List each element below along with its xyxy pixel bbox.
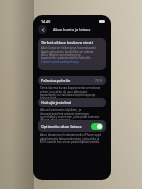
staticText: 70 % (95, 79, 103, 83)
staticText: Palautuspuhelin (41, 78, 71, 83)
button[interactable]: Optimoitu akun lataus (38, 120, 106, 132)
button[interactable]: Hoitojärjestelmä (38, 98, 106, 107)
staticText: Optimoitu akun lataus (41, 124, 82, 129)
staticText: Hoitojärjestelmä (41, 100, 72, 105)
button[interactable]: Palautuspuhelin (38, 76, 106, 85)
staticText: Akun lataamisen hidastamiseksi iPhone op… (40, 133, 103, 144)
button[interactable]: Optimoitu akun lataus (91, 123, 103, 130)
staticText: Akun kunto on heikentynyt huomattavasti.… (41, 46, 97, 59)
staticText: Tärkeä akkua koskeva viesti (41, 40, 93, 45)
staticText: Tämä lukema kuvaa kapasiteettia verrattu… (40, 86, 103, 100)
staticText: 14.40 (41, 19, 51, 24)
button[interactable]: Tärkeä akkua koskeva viesti (38, 38, 106, 70)
staticText: Akun kunto ja lataus (53, 27, 91, 32)
button[interactable]: Lisää huoltovaihtoehtoja (41, 60, 79, 64)
button[interactable]: Back (38, 25, 47, 34)
staticText: Akkusi kestämään älykkään, ja latausjärj… (40, 108, 103, 122)
